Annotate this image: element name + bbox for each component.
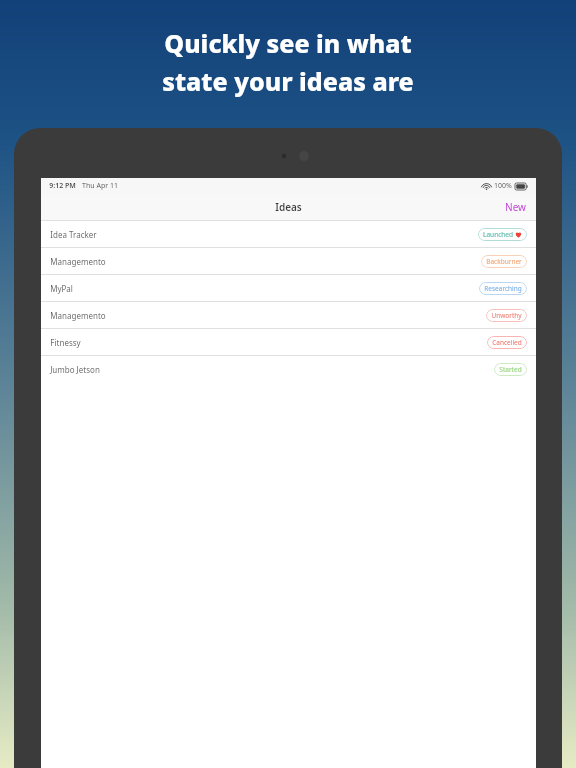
staticText: 9:12 PM [49, 181, 76, 191]
staticText: 100% [494, 181, 512, 191]
staticText: Unworthy [491, 311, 522, 320]
staticText: Backburner [486, 257, 522, 266]
staticText: Started [499, 365, 522, 374]
button[interactable]: MyPal [41, 275, 536, 301]
staticText: Quickly see in what [164, 26, 412, 60]
staticText: New [505, 200, 526, 214]
staticText: Thu Apr 11 [82, 181, 118, 191]
button[interactable]: Managemento [41, 302, 536, 328]
staticText: Cancelled [492, 338, 522, 347]
staticText: Managemento [50, 310, 106, 321]
staticText: Jumbo Jetson [50, 364, 100, 375]
button[interactable]: Jumbo Jetson [41, 356, 536, 382]
staticText: Researching [484, 284, 522, 293]
staticText: MyPal [50, 283, 73, 294]
staticText: Managemento [50, 256, 106, 267]
staticText: state your ideas are [162, 64, 414, 98]
button[interactable]: New [495, 195, 536, 219]
button[interactable]: Fitnessy [41, 329, 536, 355]
staticText: Ideas [275, 200, 302, 214]
staticText: Launched [483, 230, 513, 239]
staticText: Idea Tracker [50, 229, 97, 240]
staticText: Fitnessy [50, 337, 81, 348]
button[interactable]: Idea Tracker [41, 221, 536, 247]
button[interactable]: Managemento [41, 248, 536, 274]
